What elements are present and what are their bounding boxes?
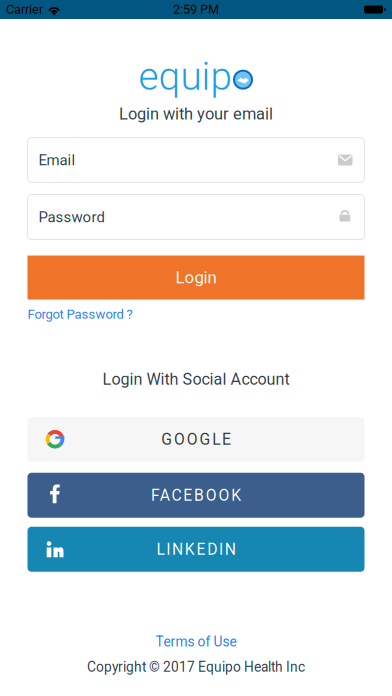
button[interactable]: Email [27,137,364,182]
staticText: 2:59 PM [173,2,219,17]
button[interactable]: Forgot Password ? [27,306,132,322]
staticText: Email [38,151,75,169]
staticText: Login [175,268,216,287]
staticText: Login With Social Account [102,370,289,389]
staticText: Forgot Password ? [27,306,132,322]
staticText: Copyright © 2017 Equipo Health Inc [87,659,305,675]
staticText: Login with your email [119,104,273,123]
staticText: FACEBOOK [151,486,241,504]
staticText: LINKEDIN [156,540,236,558]
button[interactable]: GOOGLE [27,417,364,462]
button[interactable]: Terms of Use [155,634,236,650]
staticText: Password [38,208,104,226]
staticText: Carrier [6,2,43,17]
button[interactable]: Password [27,194,364,239]
button[interactable]: Login [27,255,364,299]
staticText: GOOGLE [161,430,231,448]
button[interactable]: FACEBOOK [27,473,364,518]
staticText: equip [138,54,231,99]
button[interactable]: LINKEDIN [27,527,364,572]
staticText: Terms of Use [155,634,236,650]
